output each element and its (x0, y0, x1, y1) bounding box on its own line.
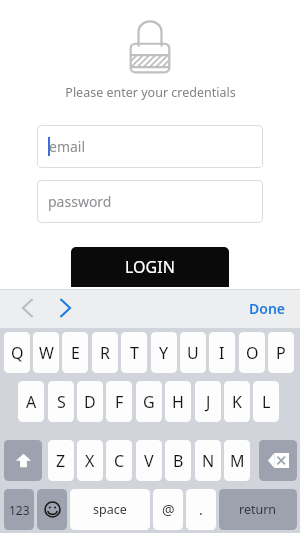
staticText: Y (159, 342, 169, 364)
button[interactable]: G (136, 381, 162, 422)
staticText: K (232, 391, 242, 413)
staticText: L (262, 391, 271, 413)
button[interactable]: Q (4, 332, 30, 373)
button[interactable]: password (37, 180, 263, 223)
staticText: W (39, 342, 54, 364)
staticText: D (84, 391, 96, 413)
staticText: V (144, 450, 154, 472)
button[interactable]: B (165, 440, 191, 481)
button[interactable]: X (77, 440, 103, 481)
staticText: . (199, 500, 203, 519)
staticText: P (276, 342, 286, 364)
button[interactable]: Emoji (37, 489, 67, 530)
button[interactable]: Z (48, 440, 74, 481)
button[interactable]: @ (153, 489, 183, 530)
button[interactable]: D (77, 381, 103, 422)
staticText: Done (249, 299, 286, 318)
button[interactable]: P (268, 332, 294, 373)
staticText: S (57, 391, 66, 413)
button[interactable]: H (165, 381, 191, 422)
staticText: O (246, 342, 259, 364)
staticText: N (202, 450, 215, 472)
staticText: Z (56, 450, 66, 472)
staticText: A (26, 391, 37, 413)
staticText: B (173, 450, 184, 472)
button[interactable]: W (33, 332, 59, 373)
button[interactable]: O (239, 332, 265, 373)
staticText: H (172, 391, 184, 413)
button[interactable]: F (106, 381, 132, 422)
staticText: F (115, 391, 124, 413)
button[interactable]: C (106, 440, 132, 481)
button[interactable]: space (70, 489, 150, 530)
button[interactable]: A (18, 381, 44, 422)
button[interactable]: email (37, 125, 263, 168)
button[interactable]: I (209, 332, 235, 373)
staticText: 123 (9, 502, 30, 518)
staticText: G (143, 391, 155, 413)
staticText: Please enter your credentials (65, 84, 236, 101)
staticText: Q (11, 342, 24, 364)
staticText: X (85, 450, 95, 472)
button[interactable]: K (224, 381, 250, 422)
staticText: LOGIN (125, 256, 175, 278)
button[interactable]: . (186, 489, 216, 530)
button[interactable]: M (224, 440, 250, 481)
staticText: U (187, 342, 199, 364)
button[interactable]: return (219, 489, 297, 530)
staticText: password (48, 192, 112, 211)
button[interactable]: T (121, 332, 147, 373)
button[interactable]: Shift (4, 440, 42, 481)
staticText: J (206, 391, 211, 413)
staticText: @ (162, 500, 175, 519)
button[interactable]: E (62, 332, 88, 373)
staticText: M (230, 450, 245, 472)
button[interactable]: S (48, 381, 74, 422)
button[interactable]: LOGIN (71, 247, 229, 287)
staticText: T (130, 342, 139, 364)
button[interactable]: 123 (4, 489, 34, 530)
button[interactable]: Y (151, 332, 177, 373)
button[interactable]: V (136, 440, 162, 481)
staticText: email (49, 137, 86, 156)
button[interactable]: Next field (48, 289, 82, 327)
button[interactable]: J (195, 381, 221, 422)
button[interactable]: R (92, 332, 118, 373)
staticText: I (219, 342, 225, 364)
staticText: C (114, 450, 125, 472)
staticText: space (93, 501, 127, 518)
staticText: E (71, 342, 80, 364)
button[interactable]: Previous field (10, 289, 44, 327)
button[interactable]: Done (245, 293, 290, 324)
button[interactable]: Backspace (259, 440, 297, 481)
button[interactable]: U (180, 332, 206, 373)
button[interactable]: N (195, 440, 221, 481)
button[interactable]: L (253, 381, 279, 422)
staticText: return (239, 501, 277, 518)
staticText: R (100, 342, 110, 364)
